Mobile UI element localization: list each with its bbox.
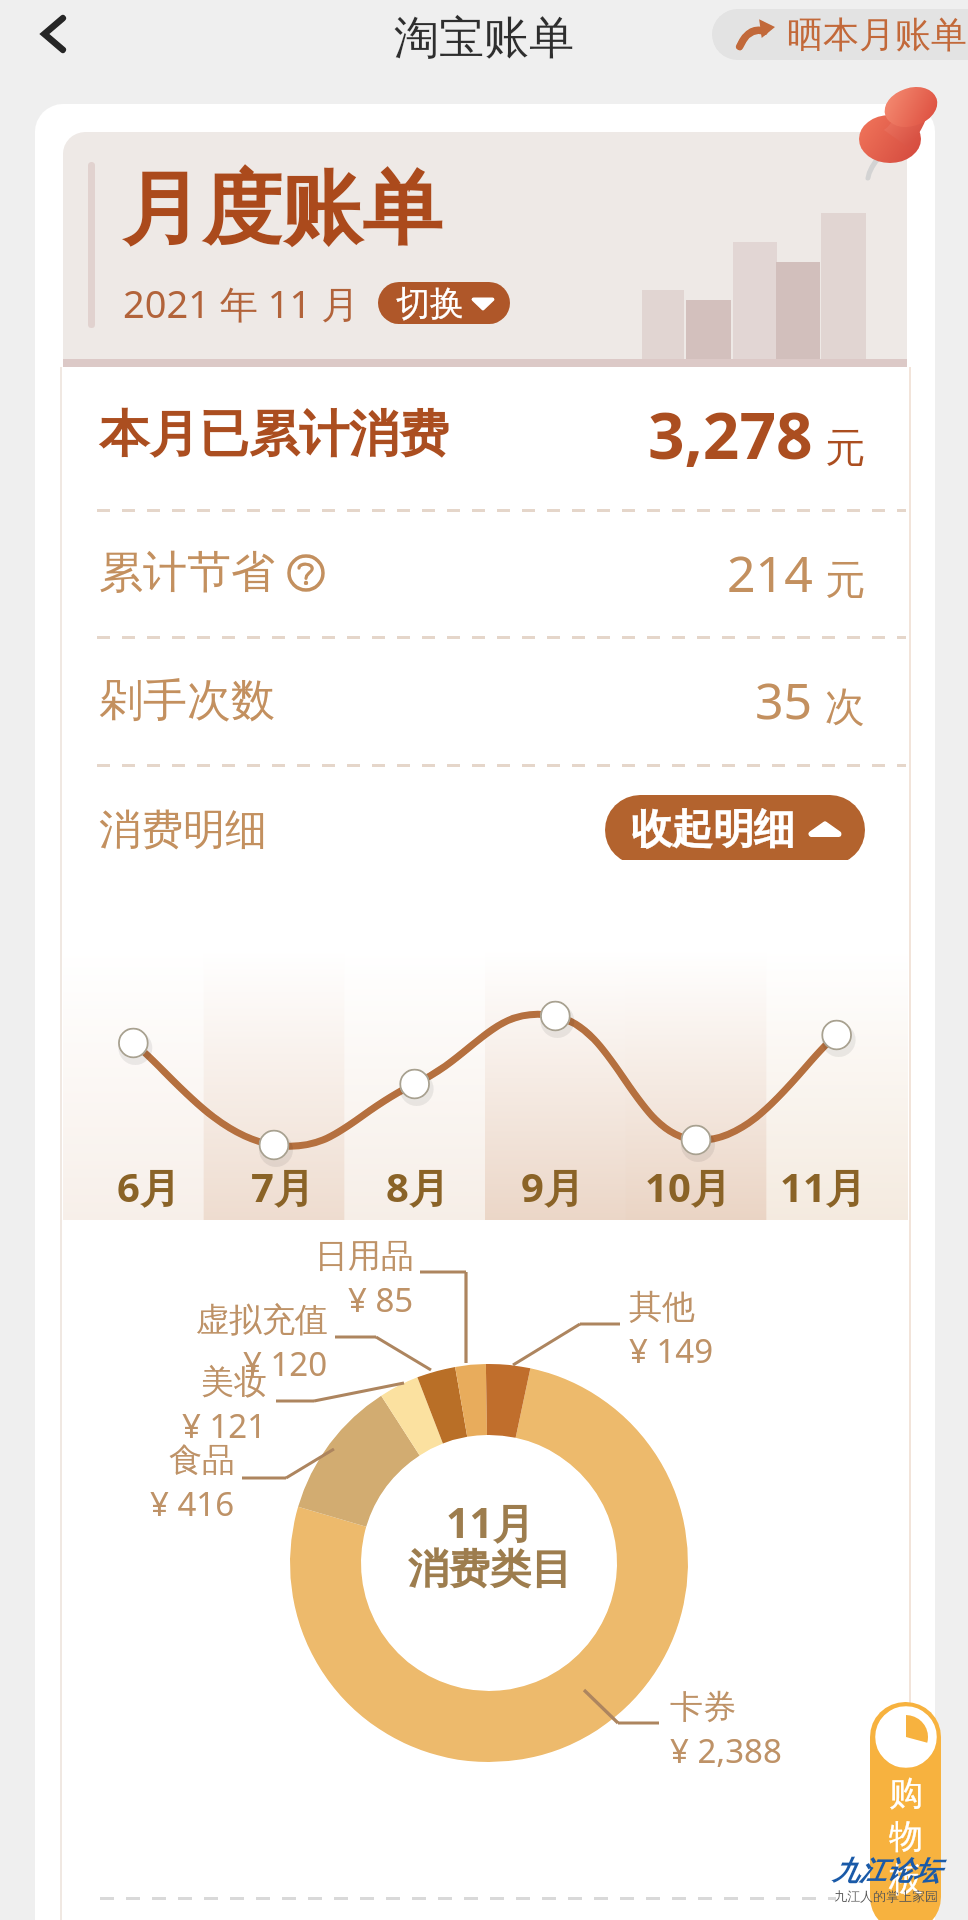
staticText: 板: [889, 1858, 923, 1901]
staticText: 10月: [645, 1159, 731, 1214]
button[interactable]: Back: [21, 1, 87, 67]
staticText: 7月: [251, 1159, 314, 1214]
staticText: 收起明细: [631, 804, 795, 856]
staticText: 食品: [169, 1439, 235, 1481]
button[interactable]: 累计节省: [99, 509, 865, 636]
staticText: 虚拟充值: [196, 1299, 328, 1341]
button[interactable]: 收起明细: [605, 795, 865, 865]
staticText: 九江人的掌上家园: [834, 1888, 938, 1904]
staticText: ¥ 85: [348, 1277, 414, 1322]
staticText: 35: [755, 666, 813, 734]
staticText: 物: [889, 1815, 923, 1858]
button[interactable]: 消费明细: [99, 764, 865, 896]
staticText: 美妆: [201, 1361, 267, 1403]
staticText: ¥ 120: [243, 1341, 328, 1386]
staticText: ¥ 2,388: [670, 1728, 782, 1773]
staticText: ¥ 121: [182, 1403, 267, 1448]
staticText: 214: [727, 539, 813, 607]
staticText: 卡券: [670, 1686, 736, 1728]
staticText: 本月已累计消费: [99, 403, 449, 466]
staticText: 购: [889, 1772, 923, 1815]
staticText: 切换: [396, 282, 464, 324]
button[interactable]: 购物板块: [870, 1702, 941, 1920]
staticText: 次: [825, 681, 865, 731]
button[interactable]: 本月已累计消费: [99, 359, 865, 509]
staticText: ¥ 416: [150, 1481, 235, 1526]
staticText: 累计节省: [99, 545, 275, 600]
staticText: 8月: [386, 1159, 449, 1214]
button[interactable]: 晒本月账单: [712, 9, 968, 60]
staticText: 11月: [780, 1159, 866, 1214]
staticText: 元: [825, 422, 865, 472]
button[interactable]: 剁手次数: [99, 636, 865, 764]
staticText: 晒本月账单: [787, 12, 967, 57]
staticText: 剁手次数: [99, 673, 275, 728]
staticText: 3,278: [648, 391, 813, 478]
button[interactable]: 累计节省说明: [287, 554, 325, 592]
staticText: 6月: [117, 1159, 180, 1214]
staticText: 淘宝账单: [394, 10, 574, 67]
staticText: 九江论坛: [832, 1854, 940, 1888]
button[interactable]: 切换: [378, 282, 510, 324]
staticText: 月度账单: [122, 159, 442, 260]
staticText: 消费明细: [99, 804, 267, 857]
staticText: 2021 年 11 月: [123, 277, 360, 329]
staticText: 其他: [629, 1286, 695, 1328]
staticText: 元: [825, 554, 865, 604]
staticText: ¥ 149: [629, 1328, 714, 1373]
staticText: 9月: [521, 1159, 584, 1214]
staticText: 11月 消费类目: [408, 1494, 572, 1595]
staticText: 日用品: [315, 1235, 414, 1277]
